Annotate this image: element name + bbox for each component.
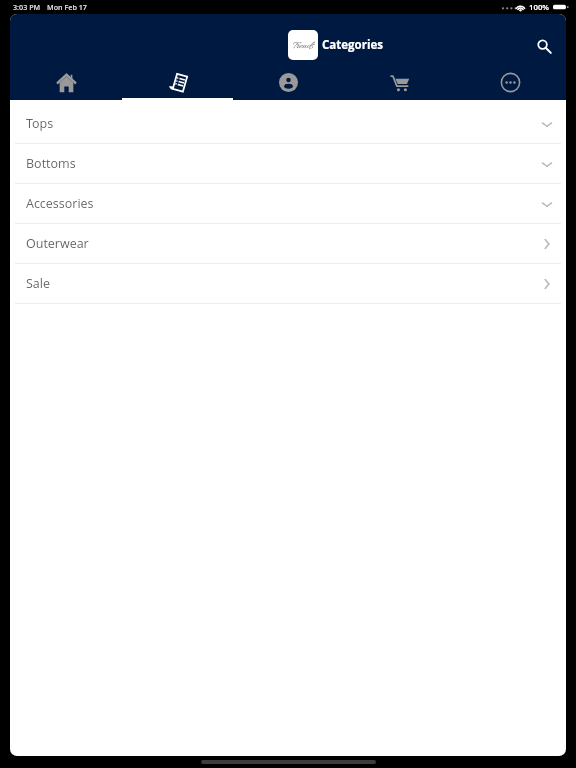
staticText: 100% <box>529 2 550 13</box>
staticText: Mon Feb 17 <box>47 2 87 12</box>
button[interactable]: Home <box>10 66 122 100</box>
staticText: Sale <box>26 275 50 292</box>
button[interactable]: Tops <box>10 104 566 143</box>
staticText: Bottoms <box>26 155 76 172</box>
button[interactable]: More <box>455 66 566 100</box>
staticText: Outerwear <box>26 235 89 252</box>
button[interactable]: Bottoms <box>10 144 566 183</box>
button[interactable]: Categories <box>122 66 233 100</box>
staticText: Accessories <box>26 195 94 212</box>
button[interactable]: Sale <box>10 264 566 303</box>
staticText: Categories <box>322 37 383 53</box>
button[interactable]: Account <box>233 66 344 100</box>
button[interactable]: Cart <box>344 66 455 100</box>
button[interactable]: Outerwear <box>10 224 566 263</box>
button[interactable]: Accessories <box>10 184 566 223</box>
button[interactable]: Search <box>530 33 558 61</box>
staticText: Tops <box>26 115 54 132</box>
staticText: Trends <box>292 40 314 53</box>
staticText: 3:03 PM <box>13 2 41 12</box>
